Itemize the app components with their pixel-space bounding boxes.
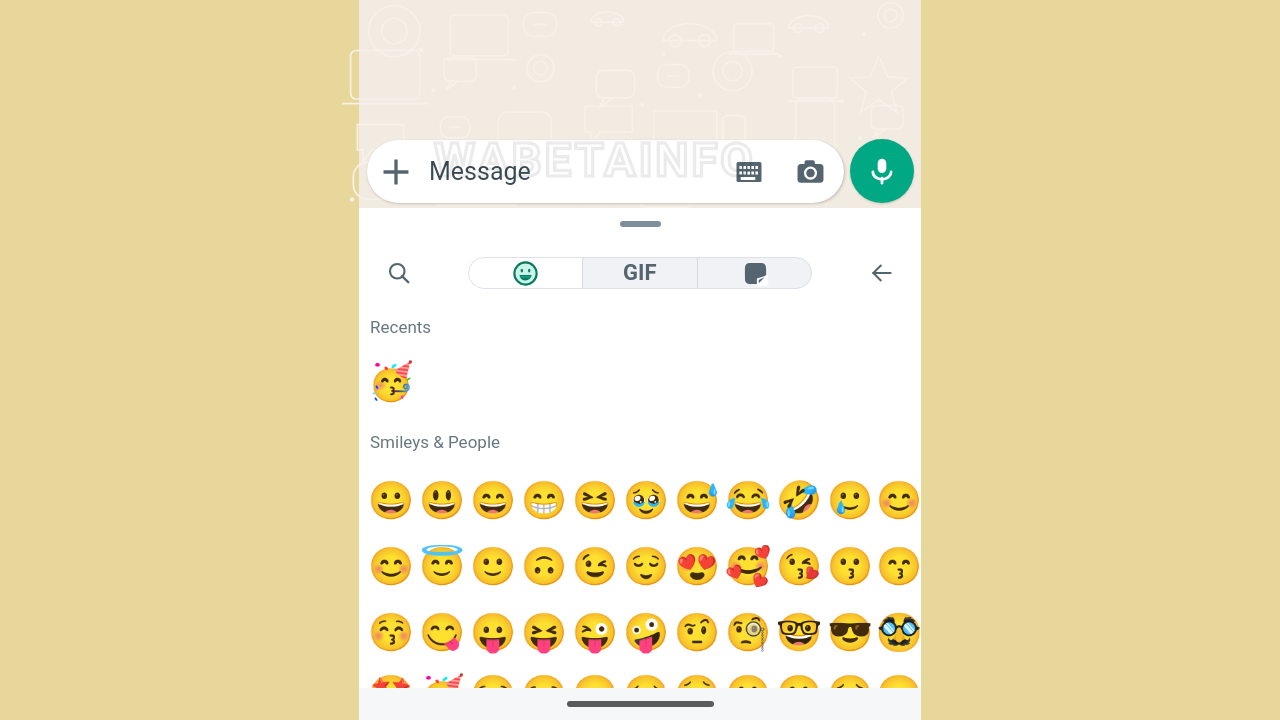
button[interactable]: 🥸 (876, 607, 921, 658)
button[interactable]: 😋 (417, 607, 468, 658)
button[interactable]: 😊 (366, 541, 417, 592)
button[interactable]: 😏 (468, 673, 519, 688)
staticText: 😕 (725, 673, 772, 688)
staticText: 😛 (470, 611, 517, 654)
staticText: 🙃 (521, 545, 568, 588)
button[interactable]: 🙂 (468, 541, 519, 592)
button[interactable]: 😅 (672, 475, 723, 526)
button[interactable]: 😃 (417, 475, 468, 526)
staticText: 🙂 (470, 545, 517, 588)
staticText: Recents (370, 317, 432, 337)
staticText: 😙 (876, 545, 921, 588)
button[interactable]: 😍 (672, 541, 723, 592)
button[interactable]: 🤣 (774, 475, 825, 526)
staticText: 🤣 (776, 479, 823, 522)
staticText: 🥹 (623, 479, 670, 522)
staticText: 😘 (776, 545, 823, 588)
button[interactable]: 🤩 (366, 673, 417, 688)
button[interactable]: 😞 (570, 673, 621, 688)
staticText: 🤨 (674, 611, 721, 654)
staticText: 😅 (674, 479, 721, 522)
button[interactable]: 😉 (570, 541, 621, 592)
staticText: 😝 (521, 611, 568, 654)
staticText: 😣 (827, 673, 874, 688)
staticText: 😎 (827, 611, 874, 654)
button[interactable]: Keyboard (736, 159, 762, 185)
staticText: 😞 (572, 673, 619, 688)
button[interactable]: Stickers (698, 257, 812, 289)
staticText: 😆 (572, 479, 619, 522)
button[interactable]: 🤨 (672, 607, 723, 658)
staticText: 🥸 (876, 611, 921, 654)
staticText: 🥰 (725, 545, 772, 588)
button[interactable]: 🥹 (621, 475, 672, 526)
button[interactable]: Attach (367, 140, 844, 203)
staticText: 🥲 (827, 479, 874, 522)
button[interactable]: 😆 (570, 475, 621, 526)
button[interactable]: Emoji (468, 257, 582, 289)
button[interactable]: Back (862, 255, 902, 291)
button[interactable]: 🥳 (417, 673, 468, 688)
staticText: 😋 (419, 611, 466, 654)
button[interactable]: 😚 (366, 607, 417, 658)
button[interactable]: 😇 (417, 541, 468, 592)
staticText: 😂 (725, 479, 772, 522)
button[interactable]: 😟 (672, 673, 723, 688)
button[interactable]: 😒 (519, 673, 570, 688)
staticText: 😇 (419, 545, 466, 588)
staticText: 😔 (623, 673, 670, 688)
button[interactable]: 🥳 (366, 356, 417, 407)
button[interactable]: 😕 (723, 673, 774, 688)
button[interactable]: 😣 (825, 673, 876, 688)
button[interactable]: 😀 (366, 475, 417, 526)
button[interactable]: 🙁 (774, 673, 825, 688)
button[interactable]: Camera (797, 158, 824, 185)
button[interactable]: 🤓 (774, 607, 825, 658)
staticText: 😌 (623, 545, 670, 588)
button[interactable]: 😌 (621, 541, 672, 592)
button[interactable]: 🥰 (723, 541, 774, 592)
staticText: 😗 (827, 545, 874, 588)
button[interactable]: 😝 (519, 607, 570, 658)
staticText: 😉 (572, 545, 619, 588)
button[interactable]: 😔 (621, 673, 672, 688)
staticText: 😖 (876, 673, 921, 688)
staticText: 🤩 (368, 673, 415, 688)
staticText: 😄 (470, 479, 517, 522)
button[interactable]: 😗 (825, 541, 876, 592)
button[interactable]: 😎 (825, 607, 876, 658)
button[interactable]: Search (379, 255, 419, 291)
button[interactable]: 😘 (774, 541, 825, 592)
staticText: 😃 (419, 479, 466, 522)
button[interactable]: 😙 (876, 541, 921, 592)
staticText: 😏 (470, 673, 517, 688)
staticText: 🧐 (725, 611, 772, 654)
button[interactable]: 🥲 (825, 475, 876, 526)
button[interactable]: 🤪 (621, 607, 672, 658)
staticText: 😍 (674, 545, 721, 588)
staticText: 🥳 (368, 360, 415, 403)
staticText: 🙁 (776, 673, 823, 688)
button[interactable]: 😄 (468, 475, 519, 526)
staticText: 🤪 (623, 611, 670, 654)
button[interactable]: 😛 (468, 607, 519, 658)
staticText: 😜 (572, 611, 619, 654)
button[interactable]: GIF (583, 257, 697, 289)
staticText: 😀 (368, 479, 415, 522)
button[interactable]: 😁 (519, 475, 570, 526)
staticText: GIF (623, 260, 657, 286)
button[interactable]: Attach (383, 159, 409, 185)
button[interactable]: 😂 (723, 475, 774, 526)
button[interactable]: 😊 (876, 475, 921, 526)
button[interactable]: Voice message (850, 139, 914, 203)
staticText: 😒 (521, 673, 568, 688)
button[interactable]: 🙃 (519, 541, 570, 592)
staticText: 😟 (674, 673, 721, 688)
button[interactable]: 😖 (876, 673, 921, 688)
button[interactable]: 😜 (570, 607, 621, 658)
staticText: 🤓 (776, 611, 823, 654)
button[interactable]: 🧐 (723, 607, 774, 658)
staticText: 🥳 (419, 673, 466, 688)
staticText: Message (429, 157, 531, 186)
staticText: 😚 (368, 611, 415, 654)
